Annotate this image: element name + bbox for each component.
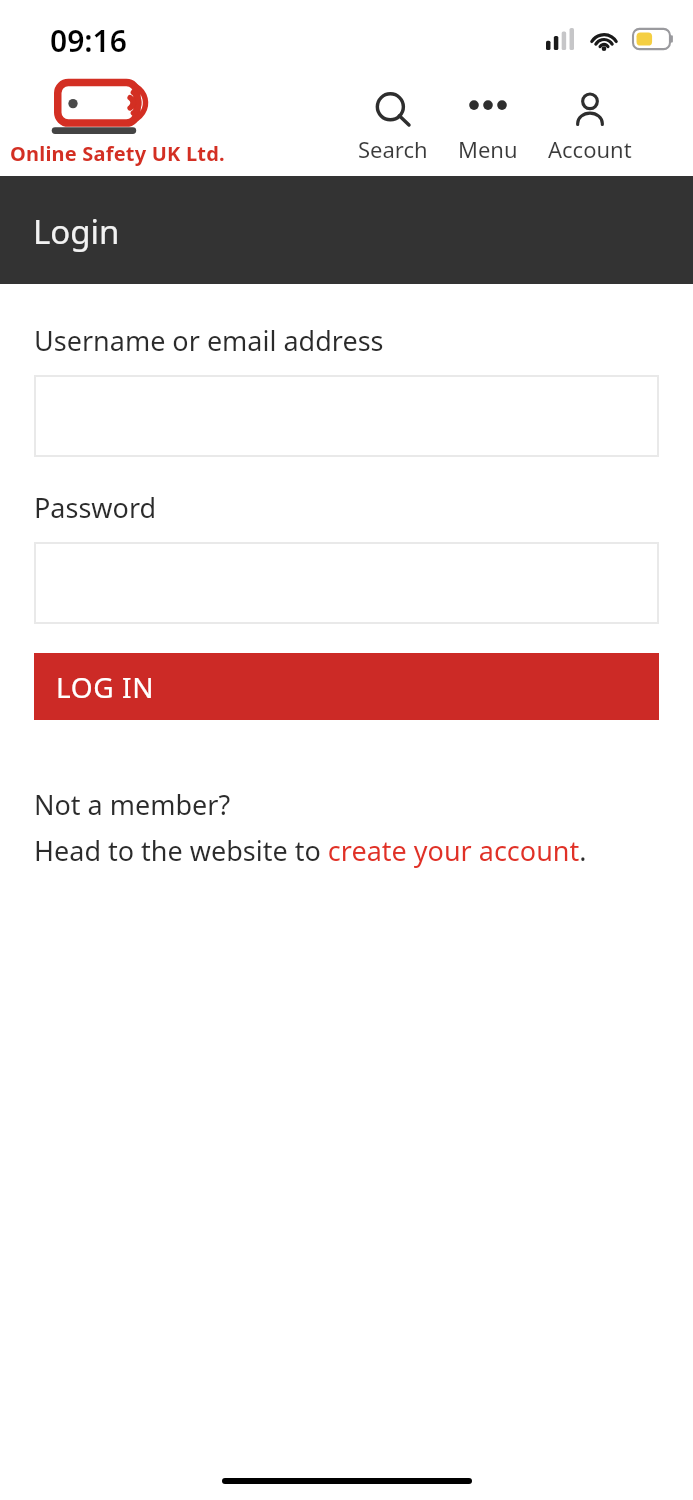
staticText: Head to the website to create your accou… bbox=[34, 832, 587, 869]
button[interactable]: Text field bbox=[34, 375, 659, 457]
button[interactable]: Online Safety UK Ltd. home bbox=[8, 79, 227, 167]
button[interactable]: Text field bbox=[34, 542, 659, 624]
staticText: Menu bbox=[458, 134, 518, 164]
staticText: Search bbox=[358, 134, 428, 164]
button[interactable]: LOG IN bbox=[34, 653, 659, 720]
staticText: Not a member? bbox=[34, 786, 231, 823]
button[interactable]: Search bbox=[345, 86, 440, 168]
button[interactable]: Menu bbox=[440, 86, 535, 168]
staticText: Online Safety UK Ltd. bbox=[10, 140, 225, 167]
staticText: 09:16 bbox=[50, 20, 127, 61]
staticText: Login bbox=[33, 209, 120, 254]
staticText: Password bbox=[34, 489, 157, 526]
staticText: LOG IN bbox=[56, 668, 155, 706]
button[interactable]: Account bbox=[535, 86, 645, 168]
staticText: Account bbox=[548, 134, 632, 164]
staticText: Username or email address bbox=[34, 322, 384, 359]
button[interactable]: Head to the website to create your accou… bbox=[34, 832, 587, 869]
